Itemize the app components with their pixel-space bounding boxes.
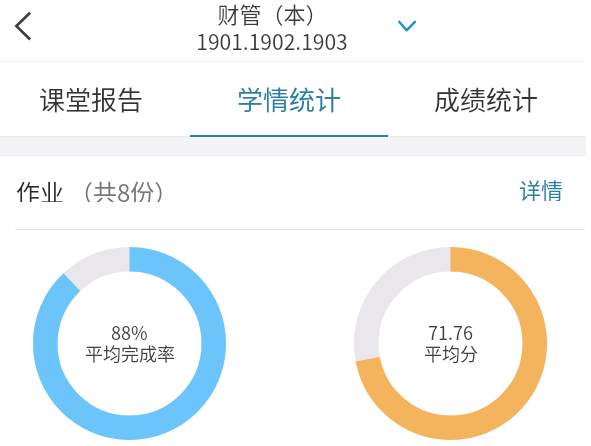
staticText: （共8份） xyxy=(69,174,179,202)
staticText: 作业 xyxy=(16,174,64,202)
button[interactable]: 学情统计 xyxy=(204,70,374,128)
staticText: 成绩统计 xyxy=(434,80,539,118)
button[interactable]: 详情 xyxy=(519,173,564,201)
staticText: 财管（本） xyxy=(217,0,328,29)
button[interactable]: 课堂报告 xyxy=(6,70,176,128)
staticText: 课堂报告 xyxy=(39,80,144,118)
button[interactable]: 成绩统计 xyxy=(401,70,571,128)
staticText: 平均分 xyxy=(424,340,478,366)
staticText: 详情 xyxy=(519,173,564,201)
staticText: 学情统计 xyxy=(237,80,342,118)
button[interactable]: Select class xyxy=(387,6,427,46)
button[interactable]: Back xyxy=(0,0,52,52)
staticText: 平均完成率 xyxy=(85,340,175,366)
staticText: 88% xyxy=(111,319,148,345)
staticText: 71.76 xyxy=(428,319,473,345)
staticText: 1901.1902.1903 xyxy=(196,26,348,56)
